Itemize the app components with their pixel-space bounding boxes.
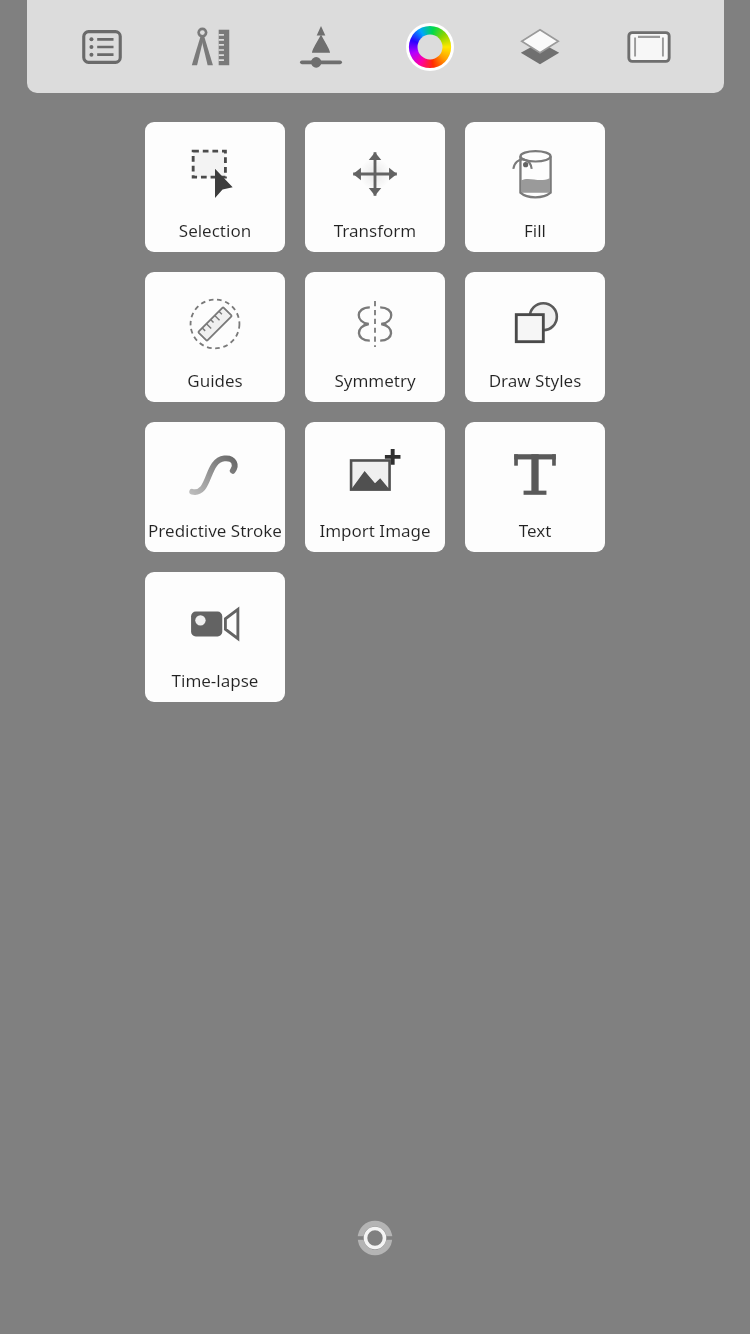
button[interactable]: Brush <box>288 14 354 80</box>
staticText: Time-lapse <box>148 669 282 692</box>
button[interactable]: Draw Styles <box>465 272 605 402</box>
button[interactable]: Layers <box>507 14 573 80</box>
button[interactable]: Predictive Stroke <box>145 422 285 552</box>
button[interactable]: Selection <box>145 122 285 252</box>
button[interactable]: Guides <box>145 272 285 402</box>
staticText: Symmetry <box>308 369 442 392</box>
staticText: Text <box>468 519 602 542</box>
button[interactable]: Fill <box>465 122 605 252</box>
staticText: Predictive Stroke <box>148 519 282 542</box>
button[interactable]: Time-lapse <box>145 572 285 702</box>
button[interactable]: Loading <box>357 1220 393 1256</box>
staticText: Selection <box>148 219 282 242</box>
button[interactable]: Canvas <box>616 14 682 80</box>
button[interactable]: Transform <box>305 122 445 252</box>
button[interactable]: Color picker <box>397 14 463 80</box>
staticText: Fill <box>468 219 602 242</box>
button[interactable]: Gallery <box>69 14 135 80</box>
button[interactable]: Import Image <box>305 422 445 552</box>
button[interactable]: Symmetry <box>305 272 445 402</box>
button[interactable]: Actions <box>178 14 244 80</box>
staticText: Transform <box>308 219 442 242</box>
staticText: Guides <box>148 369 282 392</box>
button[interactable]: Text <box>465 422 605 552</box>
staticText: Draw Styles <box>468 369 602 392</box>
staticText: Import Image <box>308 519 442 542</box>
